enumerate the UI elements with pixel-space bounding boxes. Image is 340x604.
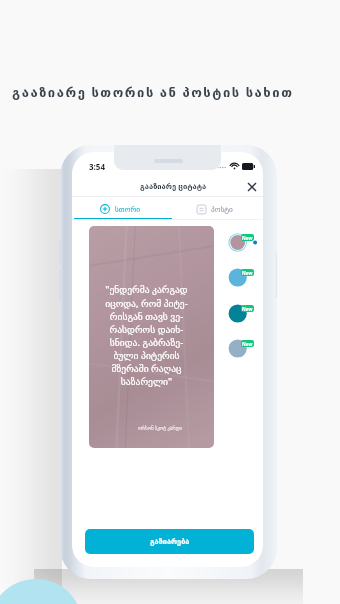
staticText: სთორი xyxy=(115,205,140,213)
button[interactable]: "ენდერმა კარგად იცოდა, რომ პიტე- რისგან … xyxy=(89,226,214,448)
staticText: "ენდერმა კარგად იცოდა, რომ პიტე- რისგან … xyxy=(97,283,196,387)
staticText: ორსონ სკოტ კარდი xyxy=(138,425,182,431)
button[interactable]: Background style 2 xyxy=(227,267,257,288)
staticText: New xyxy=(242,306,253,312)
staticText: 3:54 xyxy=(89,161,105,172)
button[interactable]: სთორი xyxy=(72,199,168,219)
staticText: პოსტი xyxy=(211,205,233,213)
button[interactable]: Background style 1 xyxy=(227,232,257,253)
staticText: გააზიარე ციტატა xyxy=(140,181,207,191)
staticText: გააზიარე სთორის ან პოსტის სახით xyxy=(12,83,294,101)
button[interactable]: გაზიარება xyxy=(85,529,254,554)
staticText: New xyxy=(242,341,253,347)
staticText: გაზიარება xyxy=(150,537,190,546)
button[interactable]: Background style 3 xyxy=(227,303,257,324)
button[interactable]: Close xyxy=(242,177,261,196)
staticText: New xyxy=(242,235,253,241)
button[interactable]: Background style 4 xyxy=(227,338,257,359)
staticText: New xyxy=(242,270,253,276)
button[interactable]: პოსტი xyxy=(167,199,263,219)
